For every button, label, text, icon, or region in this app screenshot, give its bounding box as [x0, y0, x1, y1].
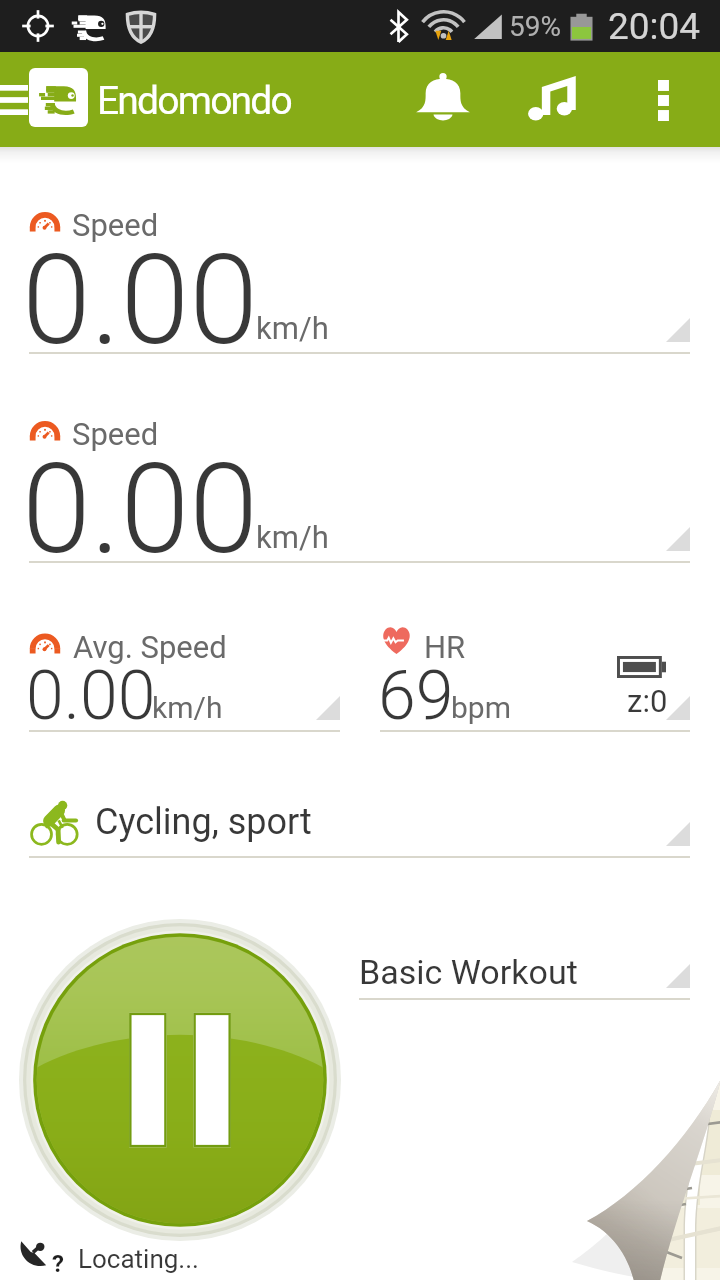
staticText: Speed — [72, 207, 159, 243]
staticText: bpm — [451, 690, 511, 725]
staticText: Cycling, sport — [95, 801, 312, 843]
staticText: 0.00 — [22, 437, 258, 582]
staticText: km/h — [256, 310, 329, 346]
staticText: Speed — [72, 416, 159, 452]
button[interactable]: Pause workout — [19, 919, 341, 1241]
button[interactable]: Avg. Speed — [29, 608, 340, 732]
staticText: 59% — [509, 10, 561, 43]
button[interactable]: Basic Workout — [352, 928, 692, 1000]
staticText: 0.00 — [22, 228, 258, 373]
button[interactable]: Map — [540, 1070, 720, 1280]
staticText: Endomondo — [97, 78, 291, 124]
staticText: km/h — [152, 690, 223, 725]
staticText: ? — [52, 1250, 64, 1278]
button[interactable]: Speed — [0, 391, 720, 563]
button[interactable]: HR — [380, 608, 690, 732]
staticText: 69 — [378, 656, 454, 736]
staticText: z:0 — [627, 683, 668, 719]
staticText: Locating... — [78, 1244, 199, 1274]
staticText: Basic Workout — [359, 952, 578, 992]
button[interactable]: Notifications — [390, 52, 496, 148]
staticText: Avg. Speed — [73, 629, 227, 665]
button[interactable]: Music — [500, 52, 606, 148]
button[interactable]: More options — [615, 52, 715, 148]
staticText: km/h — [256, 519, 329, 555]
button[interactable]: Speed — [0, 182, 720, 354]
staticText: HR — [424, 629, 466, 665]
button[interactable]: Open navigation menu — [0, 52, 34, 148]
staticText: 20:04 — [608, 5, 701, 48]
button[interactable]: Cycling, sport — [0, 780, 720, 858]
staticText: 0.00 — [26, 656, 156, 736]
